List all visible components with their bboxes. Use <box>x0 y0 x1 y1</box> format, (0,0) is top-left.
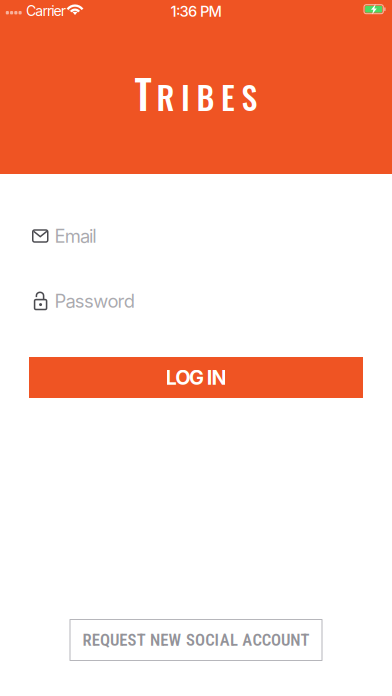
button[interactable]: LOG IN <box>29 357 363 398</box>
staticText: Password <box>54 290 135 312</box>
staticText: LOG IN <box>165 365 226 390</box>
staticText: Email <box>54 225 96 247</box>
staticText: RIBES <box>156 73 257 120</box>
staticText: REQUEST NEW SOCIAL ACCOUNT <box>82 630 309 650</box>
staticText: Carrier <box>26 2 66 19</box>
button[interactable]: REQUEST NEW SOCIAL ACCOUNT <box>69 619 322 661</box>
staticText: 1:36 PM <box>170 2 221 20</box>
staticText: T <box>134 63 151 123</box>
